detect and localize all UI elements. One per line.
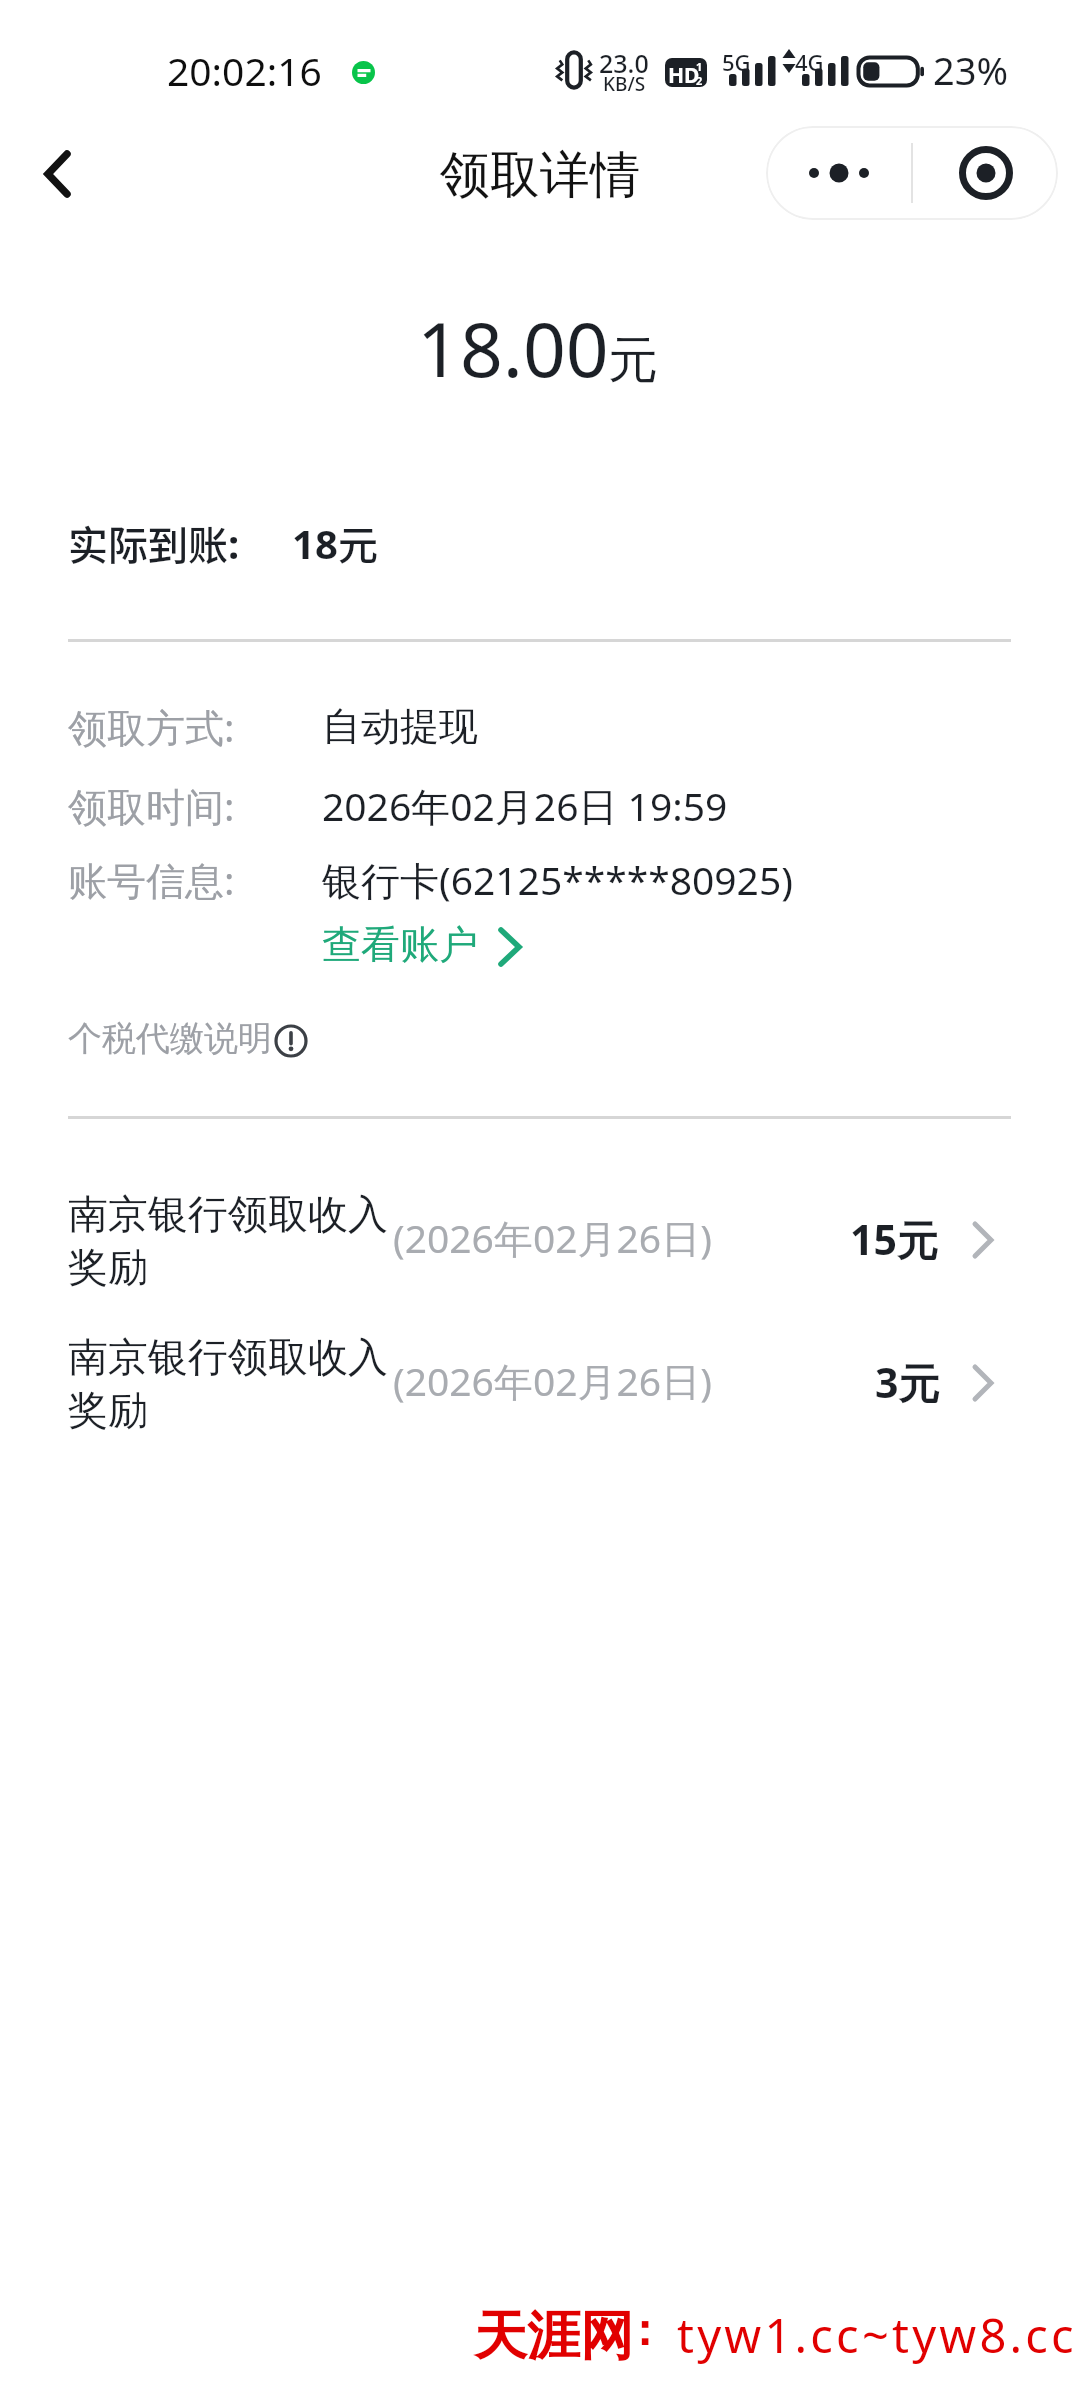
- staticText: 领取时间:: [68, 779, 322, 832]
- staticText: 元: [338, 514, 378, 572]
- staticText: (2026年02月26日): [393, 1354, 712, 1407]
- staticText: 18.00: [417, 297, 609, 399]
- staticText: 23%: [933, 44, 1009, 96]
- staticText: 天涯网: [474, 2303, 633, 2370]
- staticText: 15元: [850, 1211, 938, 1267]
- staticText: 南京银行领取收入奖励: [68, 1189, 398, 1292]
- staticText: 南京银行领取收入奖励: [68, 1332, 398, 1435]
- staticText: ：: [622, 2303, 666, 2358]
- staticText: 实际到账: [68, 514, 228, 572]
- button[interactable]: 返回: [22, 140, 92, 208]
- staticText: 18: [292, 516, 338, 570]
- staticText: KB/S: [603, 71, 646, 97]
- staticText: 20:02:16: [167, 44, 322, 97]
- staticText: 领取方式:: [68, 700, 322, 753]
- button[interactable]: 个税代缴说明: [68, 1009, 314, 1068]
- staticText: 5G: [722, 47, 751, 77]
- staticText: 元: [608, 329, 658, 392]
- staticText: 1: [696, 59, 703, 74]
- button[interactable]: 南京银行领取收入奖励: [0, 1190, 1080, 1333]
- button[interactable]: 南京银行领取收入奖励: [0, 1333, 1080, 1476]
- button[interactable]: 关闭: [913, 126, 1058, 220]
- staticText: tyw1.cc~tyw8.cc: [677, 2303, 1077, 2367]
- staticText: 个税代缴说明: [68, 1017, 272, 1060]
- staticText: 2026年02月26日 19:59: [322, 779, 728, 832]
- staticText: HD: [668, 61, 700, 87]
- staticText: 2: [696, 73, 703, 87]
- staticText: :: [228, 516, 240, 570]
- staticText: 3元: [875, 1354, 940, 1410]
- button[interactable]: 查看账户: [322, 912, 530, 977]
- staticText: 23.0: [599, 46, 649, 80]
- button[interactable]: 更多: [766, 126, 911, 220]
- staticText: 4G: [795, 47, 824, 77]
- staticText: 查看账户: [322, 920, 478, 969]
- staticText: 领取详情: [440, 144, 640, 207]
- staticText: 自动提现: [322, 702, 478, 751]
- staticText: (2026年02月26日): [393, 1211, 712, 1264]
- staticText: 账号信息:: [68, 853, 322, 906]
- staticText: 银行卡(62125*****80925): [322, 853, 793, 906]
